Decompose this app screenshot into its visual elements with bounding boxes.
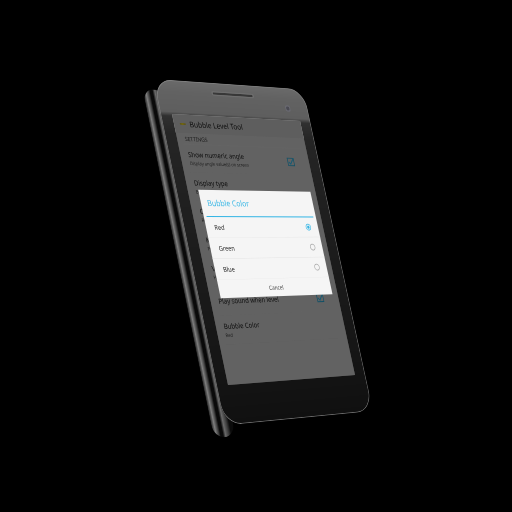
staticText: Play sound when level (217, 294, 280, 306)
staticText: Blue (222, 263, 315, 274)
staticText: Display angle value(s) on screen (189, 160, 250, 168)
staticText: Bubble Color (223, 320, 261, 331)
staticText: Bubble Color (206, 197, 250, 209)
button[interactable]: Show numeric angle (285, 156, 296, 167)
staticText: Bubble (195, 188, 210, 195)
button[interactable]: Play sound when level (208, 283, 341, 316)
button[interactable]: Vibrate when level (202, 256, 335, 287)
button[interactable]: App icon (172, 114, 304, 138)
staticText: Show numeric angle (187, 150, 245, 161)
button[interactable]: Green (208, 237, 324, 258)
button[interactable]: Keep screen on (302, 237, 314, 249)
button[interactable]: Show numeric angle (178, 144, 312, 175)
staticText: Reset reference when opened (201, 217, 258, 224)
button[interactable]: Bubble Color (214, 311, 347, 345)
staticText: Vibrate when level (211, 263, 263, 273)
staticText: Haptic feedback (213, 273, 244, 281)
staticText: Keep screen on (205, 235, 249, 245)
staticText: Prevent display timeout (207, 245, 252, 252)
staticText: Display type (193, 178, 229, 188)
staticText: Red (213, 223, 307, 232)
staticText: Calibrate on start (199, 206, 249, 216)
button[interactable]: Vibrate when level (308, 264, 320, 276)
button[interactable]: Calibrate on start (297, 210, 308, 221)
button[interactable]: Display type (184, 172, 318, 202)
other: App icon (179, 120, 187, 128)
button[interactable]: Cancel (217, 277, 332, 298)
button[interactable]: Calibrate on start (190, 201, 323, 229)
button[interactable]: Red (204, 217, 320, 237)
staticText: Cancel (268, 283, 284, 292)
button[interactable]: Blue (213, 257, 329, 280)
staticText: SETTINGS (184, 135, 208, 143)
staticText: Bubble Level Tool (188, 119, 244, 132)
staticText: Red (225, 332, 234, 339)
button[interactable]: Play sound when level (314, 292, 326, 303)
button[interactable]: Keep screen on (196, 229, 329, 258)
staticText: Green (218, 243, 311, 253)
